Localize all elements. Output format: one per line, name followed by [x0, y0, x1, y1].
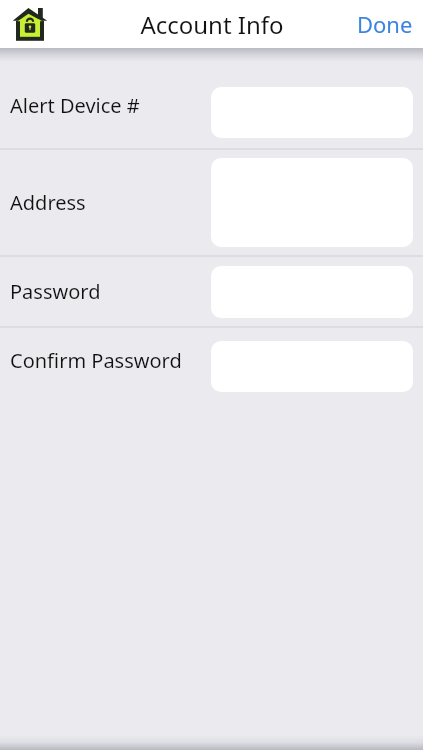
button[interactable]: Alert Device # [0, 62, 423, 148]
button[interactable]: Address [0, 150, 423, 255]
button[interactable]: Password [0, 257, 423, 326]
button[interactable]: Confirm Password [0, 328, 423, 393]
staticText: Alert Device # [10, 92, 140, 119]
staticText: Account Info [140, 8, 284, 41]
button[interactable]: Done [347, 3, 423, 45]
staticText: Address [10, 189, 86, 216]
button[interactable]: Home [8, 2, 52, 46]
staticText: Password [10, 278, 101, 305]
staticText: Confirm Password [10, 347, 182, 374]
staticText: Done [357, 9, 413, 39]
